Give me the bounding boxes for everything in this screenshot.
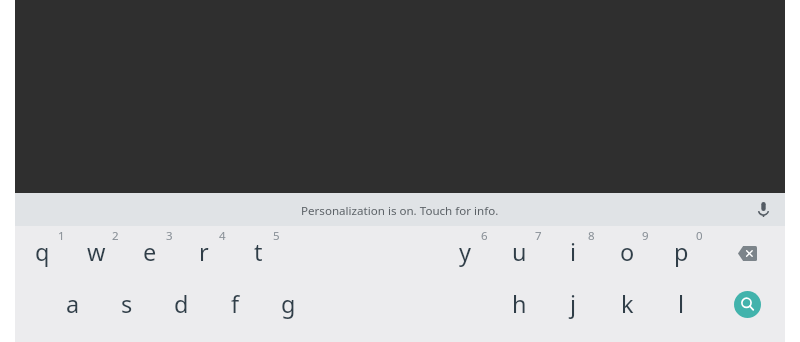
button[interactable]: a <box>46 276 100 329</box>
button[interactable]: q <box>15 224 69 277</box>
staticText: 3 <box>166 228 173 244</box>
staticText: e <box>143 236 157 268</box>
button[interactable]: d <box>154 276 208 329</box>
button[interactable]: e <box>123 224 177 277</box>
button[interactable]: p <box>654 224 708 277</box>
staticText: d <box>174 288 189 320</box>
button[interactable]: h <box>492 276 546 329</box>
staticText: 5 <box>273 228 280 244</box>
staticText: h <box>512 288 527 320</box>
staticText: y <box>459 236 471 268</box>
button[interactable]: r <box>177 224 231 277</box>
button[interactable]: g <box>261 276 315 329</box>
button[interactable]: s <box>100 276 154 329</box>
button[interactable]: f <box>208 276 262 329</box>
button[interactable]: l <box>654 276 708 329</box>
staticText: q <box>35 236 50 268</box>
button[interactable]: o <box>600 224 654 277</box>
staticText: o <box>620 236 635 268</box>
button[interactable]: t <box>231 224 285 277</box>
button[interactable]: Personalization is on. Touch for info. <box>301 203 499 219</box>
staticText: s <box>121 288 133 320</box>
button[interactable]: Voice input <box>748 194 778 224</box>
staticText: 9 <box>642 228 649 244</box>
button[interactable]: j <box>546 276 600 329</box>
staticText: 1 <box>58 228 65 244</box>
staticText: 4 <box>219 228 226 244</box>
button[interactable]: y <box>438 224 492 277</box>
staticText: 8 <box>588 228 595 244</box>
button[interactable]: Backspace <box>719 227 775 280</box>
staticText: j <box>570 288 577 320</box>
button[interactable]: Search <box>719 278 775 331</box>
staticText: g <box>281 288 296 320</box>
staticText: w <box>87 236 106 268</box>
staticText: a <box>66 288 80 320</box>
staticText: l <box>678 288 685 320</box>
button[interactable]: u <box>492 224 546 277</box>
staticText: 2 <box>112 228 119 244</box>
staticText: 6 <box>481 228 488 244</box>
staticText: r <box>199 236 209 268</box>
button[interactable]: i <box>546 224 600 277</box>
staticText: i <box>570 236 577 268</box>
staticText: 7 <box>535 228 542 244</box>
staticText: f <box>231 288 240 320</box>
staticText: p <box>674 236 689 268</box>
button[interactable]: w <box>69 224 123 277</box>
staticText: k <box>621 288 634 320</box>
staticText: Personalization is on. Touch for info. <box>301 203 499 219</box>
staticText: t <box>254 236 263 268</box>
staticText: 0 <box>696 228 703 244</box>
button[interactable]: k <box>600 276 654 329</box>
staticText: u <box>512 236 527 268</box>
